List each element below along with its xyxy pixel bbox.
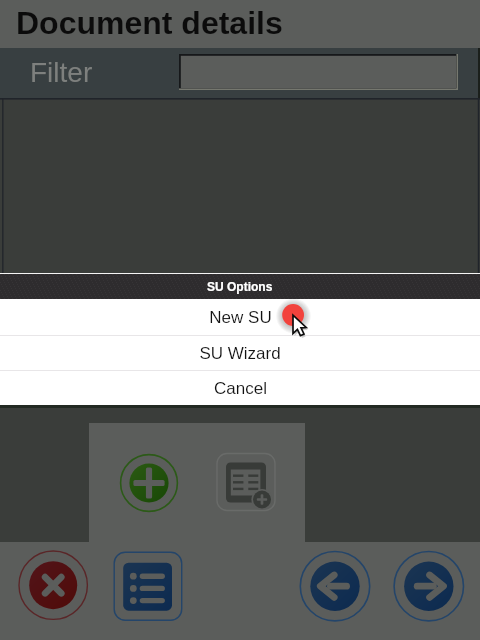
staticText: Cancel bbox=[214, 379, 267, 398]
staticText: New SU bbox=[209, 308, 272, 327]
button[interactable]: Cancel bbox=[19, 551, 88, 620]
staticText: SU Options bbox=[207, 280, 273, 293]
button[interactable]: SU Wizard bbox=[0, 336, 480, 370]
button[interactable] bbox=[179, 54, 458, 90]
button[interactable]: New SU bbox=[0, 299, 480, 335]
staticText: SU Wizard bbox=[199, 344, 281, 363]
button[interactable]: Forward bbox=[394, 551, 464, 621]
button[interactable]: Back bbox=[300, 551, 370, 621]
staticText: Filter bbox=[30, 57, 93, 88]
button[interactable]: Cancel bbox=[0, 371, 480, 405]
staticText: Document details bbox=[16, 5, 283, 41]
button[interactable]: List bbox=[113, 552, 182, 621]
button[interactable]: Add bbox=[118, 452, 180, 514]
button[interactable]: New document bbox=[215, 452, 277, 514]
